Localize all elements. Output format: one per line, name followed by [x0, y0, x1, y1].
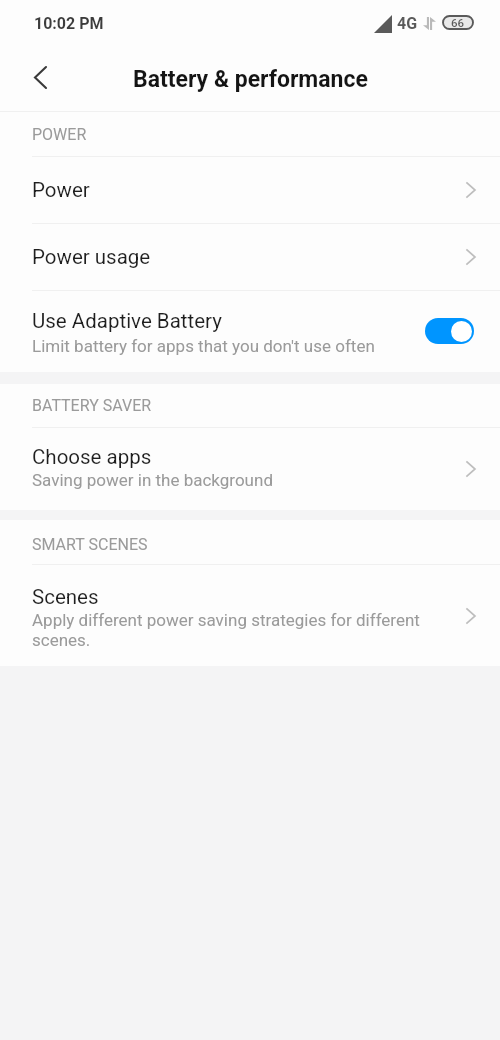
staticText: POWER	[32, 125, 87, 144]
button[interactable]: Choose apps	[0, 428, 500, 510]
button[interactable]: Power usage	[0, 224, 500, 290]
staticText: SMART SCENES	[32, 535, 148, 554]
button[interactable]: Back	[9, 48, 71, 110]
button[interactable]: Power	[0, 157, 500, 223]
staticText: Saving power in the background	[32, 470, 273, 490]
staticText: Use Adaptive Battery	[32, 309, 222, 333]
staticText: Choose apps	[32, 445, 152, 469]
staticText: Power usage	[32, 245, 151, 269]
staticText: Battery & performance	[133, 66, 368, 93]
button[interactable]: Use Adaptive Battery toggle	[425, 318, 474, 344]
staticText: Apply different power saving strategies …	[32, 610, 438, 650]
staticText: Limit battery for apps that you don't us…	[32, 336, 375, 356]
button[interactable]: Scenes	[0, 565, 500, 666]
staticText: 66	[451, 16, 465, 29]
staticText: Scenes	[32, 585, 99, 609]
staticText: 4G	[397, 14, 418, 33]
staticText: BATTERY SAVER	[32, 396, 152, 415]
staticText: 10:02 PM	[34, 14, 104, 33]
button[interactable]: Use Adaptive Battery	[0, 291, 500, 372]
staticText: Power	[32, 178, 90, 202]
